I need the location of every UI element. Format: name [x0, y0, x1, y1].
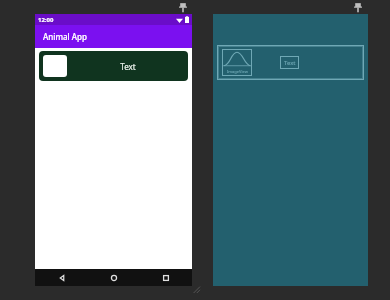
- button[interactable]: 12:00: [35, 14, 192, 286]
- button[interactable]: Pin: [353, 1, 363, 13]
- button[interactable]: Home: [88, 269, 140, 286]
- button[interactable]: ImageView: [213, 14, 368, 286]
- button[interactable]: Back: [35, 269, 88, 286]
- staticText: ImageView: [227, 69, 248, 74]
- staticText: Animal App: [43, 31, 87, 42]
- button[interactable]: Pin: [178, 1, 188, 13]
- staticText: Text: [284, 59, 296, 67]
- staticText: Text: [120, 61, 136, 72]
- button[interactable]: Recents: [140, 269, 192, 286]
- staticText: 12:00: [38, 16, 54, 24]
- button[interactable]: Animal App: [35, 25, 192, 48]
- button[interactable]: Text: [39, 51, 188, 81]
